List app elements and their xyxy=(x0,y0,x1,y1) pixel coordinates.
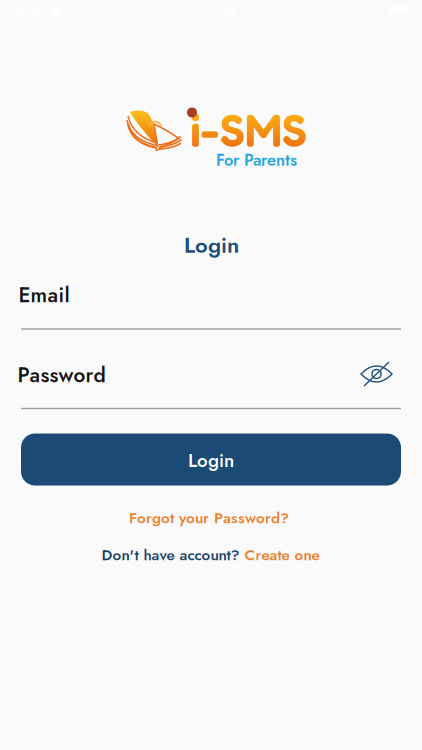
staticText: Email xyxy=(18,280,69,310)
button[interactable]: Login xyxy=(21,433,401,485)
staticText: Create one xyxy=(244,544,319,566)
button[interactable]: Show password xyxy=(0,0,422,750)
staticText: Don't have account? xyxy=(101,544,239,566)
button[interactable]: Email xyxy=(0,0,422,750)
staticText: Login xyxy=(188,447,234,474)
button[interactable]: Forgot your Password? xyxy=(129,507,289,529)
button[interactable]: Don't have account? xyxy=(101,544,319,566)
staticText: For Parents xyxy=(216,148,297,172)
staticText: Password xyxy=(17,360,105,390)
staticText: Forgot your Password? xyxy=(129,507,289,529)
staticText: Login xyxy=(184,229,239,261)
button[interactable]: Password xyxy=(0,0,422,750)
